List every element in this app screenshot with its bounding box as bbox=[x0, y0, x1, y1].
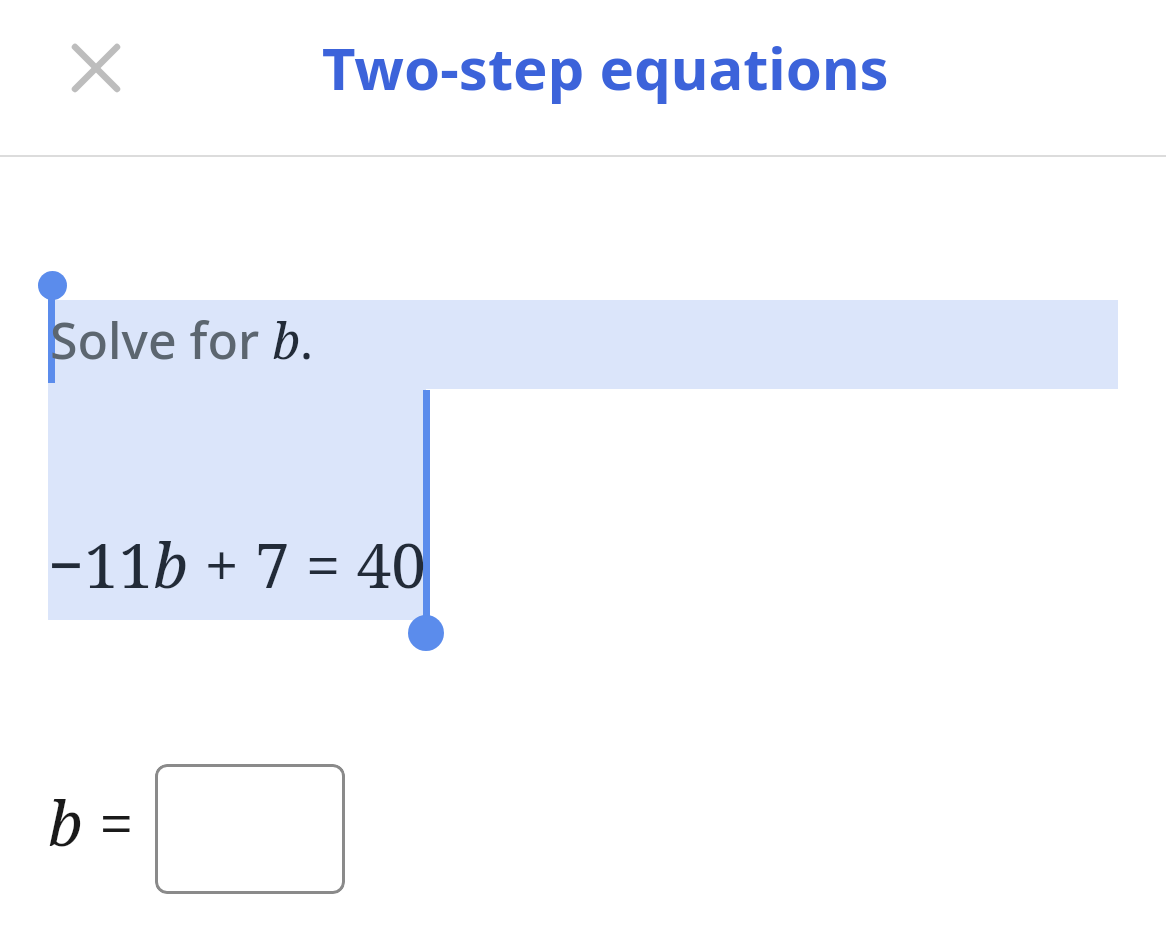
button[interactable]: Selection start handle bbox=[38, 271, 67, 300]
staticText: −11b + 7 = 40 bbox=[48, 522, 426, 606]
staticText: b = bbox=[48, 780, 134, 864]
staticText: Solve for b. bbox=[50, 306, 313, 374]
button[interactable]: Close bbox=[48, 20, 144, 116]
staticText: Two-step equations bbox=[322, 28, 889, 107]
button[interactable]: Selection end handle bbox=[408, 615, 444, 651]
button[interactable]: Answer input bbox=[155, 764, 345, 894]
